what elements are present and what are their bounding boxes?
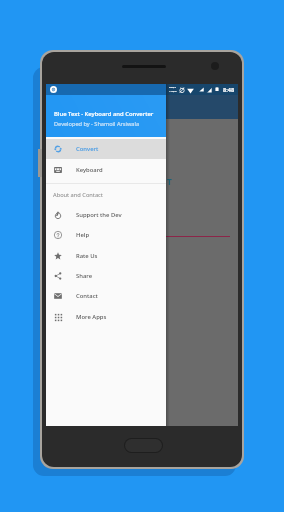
staticText: Developed by - Shamoil Arsiwala xyxy=(54,120,140,128)
staticText: T xyxy=(167,176,172,187)
staticText: Blue Text - Keyboard and Converter xyxy=(54,110,154,118)
staticText: Share xyxy=(76,272,93,280)
other: Location xyxy=(50,86,57,93)
staticText: Convert xyxy=(76,145,99,153)
staticText: Keyboard xyxy=(76,166,103,174)
staticText: Contact xyxy=(76,292,98,300)
button[interactable]: Contact xyxy=(46,286,166,306)
button[interactable]: Rate Us xyxy=(46,246,166,266)
staticText: Rate Us xyxy=(76,252,98,260)
button[interactable]: Share xyxy=(46,266,166,286)
staticText: Help xyxy=(76,231,90,239)
button[interactable]: Keyboard xyxy=(46,160,166,180)
staticText: 8:48 xyxy=(223,86,235,94)
staticText: 1.4Kb/s xyxy=(169,90,177,93)
staticText: More Apps xyxy=(76,313,107,321)
staticText: Support the Dev xyxy=(76,211,122,219)
button[interactable]: Convert xyxy=(46,139,166,159)
button[interactable]: More Apps xyxy=(46,307,166,327)
button[interactable]: Support the Dev xyxy=(46,205,166,225)
button[interactable]: Help xyxy=(46,225,166,245)
staticText: 80Kb/s xyxy=(169,86,177,89)
staticText: About and Contact xyxy=(53,191,103,199)
